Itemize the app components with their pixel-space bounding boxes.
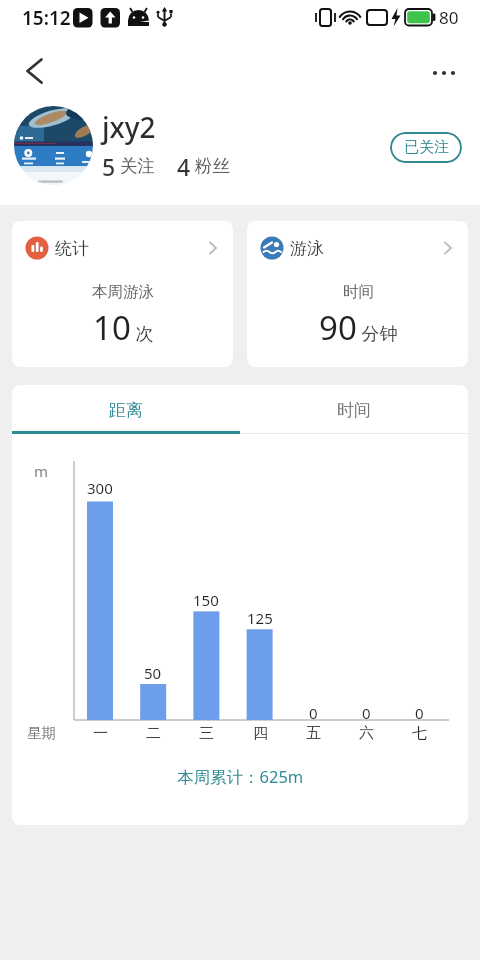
button[interactable] [14,106,93,185]
button[interactable]: 游泳 [247,221,468,367]
button[interactable]: 已关注 [390,132,462,163]
staticText: 关注 [120,155,155,177]
staticText: 10 次 [93,305,154,349]
staticText: 4 [177,151,191,181]
staticText: 星期 [27,724,56,742]
staticText: 0 [415,703,424,723]
staticText: 七 [412,724,427,743]
staticText: 50 [144,663,162,683]
staticText: 时间 [343,282,374,302]
staticText: 300 [87,478,113,498]
staticText: 本周游泳 [92,282,154,302]
staticText: 六 [359,724,374,743]
staticText: 一 [93,724,108,743]
staticText: 统计 [55,238,89,259]
staticText: 本周累计：625m [177,765,304,788]
staticText: 三 [199,724,214,743]
button[interactable]: 统计 [12,221,233,367]
staticText: 5 [102,151,116,181]
staticText: 五 [306,724,321,743]
staticText: m [34,461,49,481]
staticText: 90 分钟 [319,305,398,349]
staticText: 二 [146,724,161,743]
staticText: jxy2 [102,108,156,146]
staticText: 0 [309,703,318,723]
staticText: 时间 [337,400,371,421]
staticText: 四 [253,724,268,743]
button[interactable] [14,50,58,94]
staticText: 0 [362,703,371,723]
button[interactable]: 时间 [240,385,468,435]
staticText: 125 [247,608,273,628]
staticText: 15:12 [22,5,71,31]
staticText: 已关注 [404,138,449,157]
staticText: 粉丝 [195,155,230,177]
button[interactable] [424,55,464,91]
staticText: 游泳 [290,238,324,259]
button[interactable]: 距离 [12,385,240,435]
staticText: 距离 [109,400,143,421]
staticText: 80 [439,6,459,29]
staticText: 150 [193,590,219,610]
